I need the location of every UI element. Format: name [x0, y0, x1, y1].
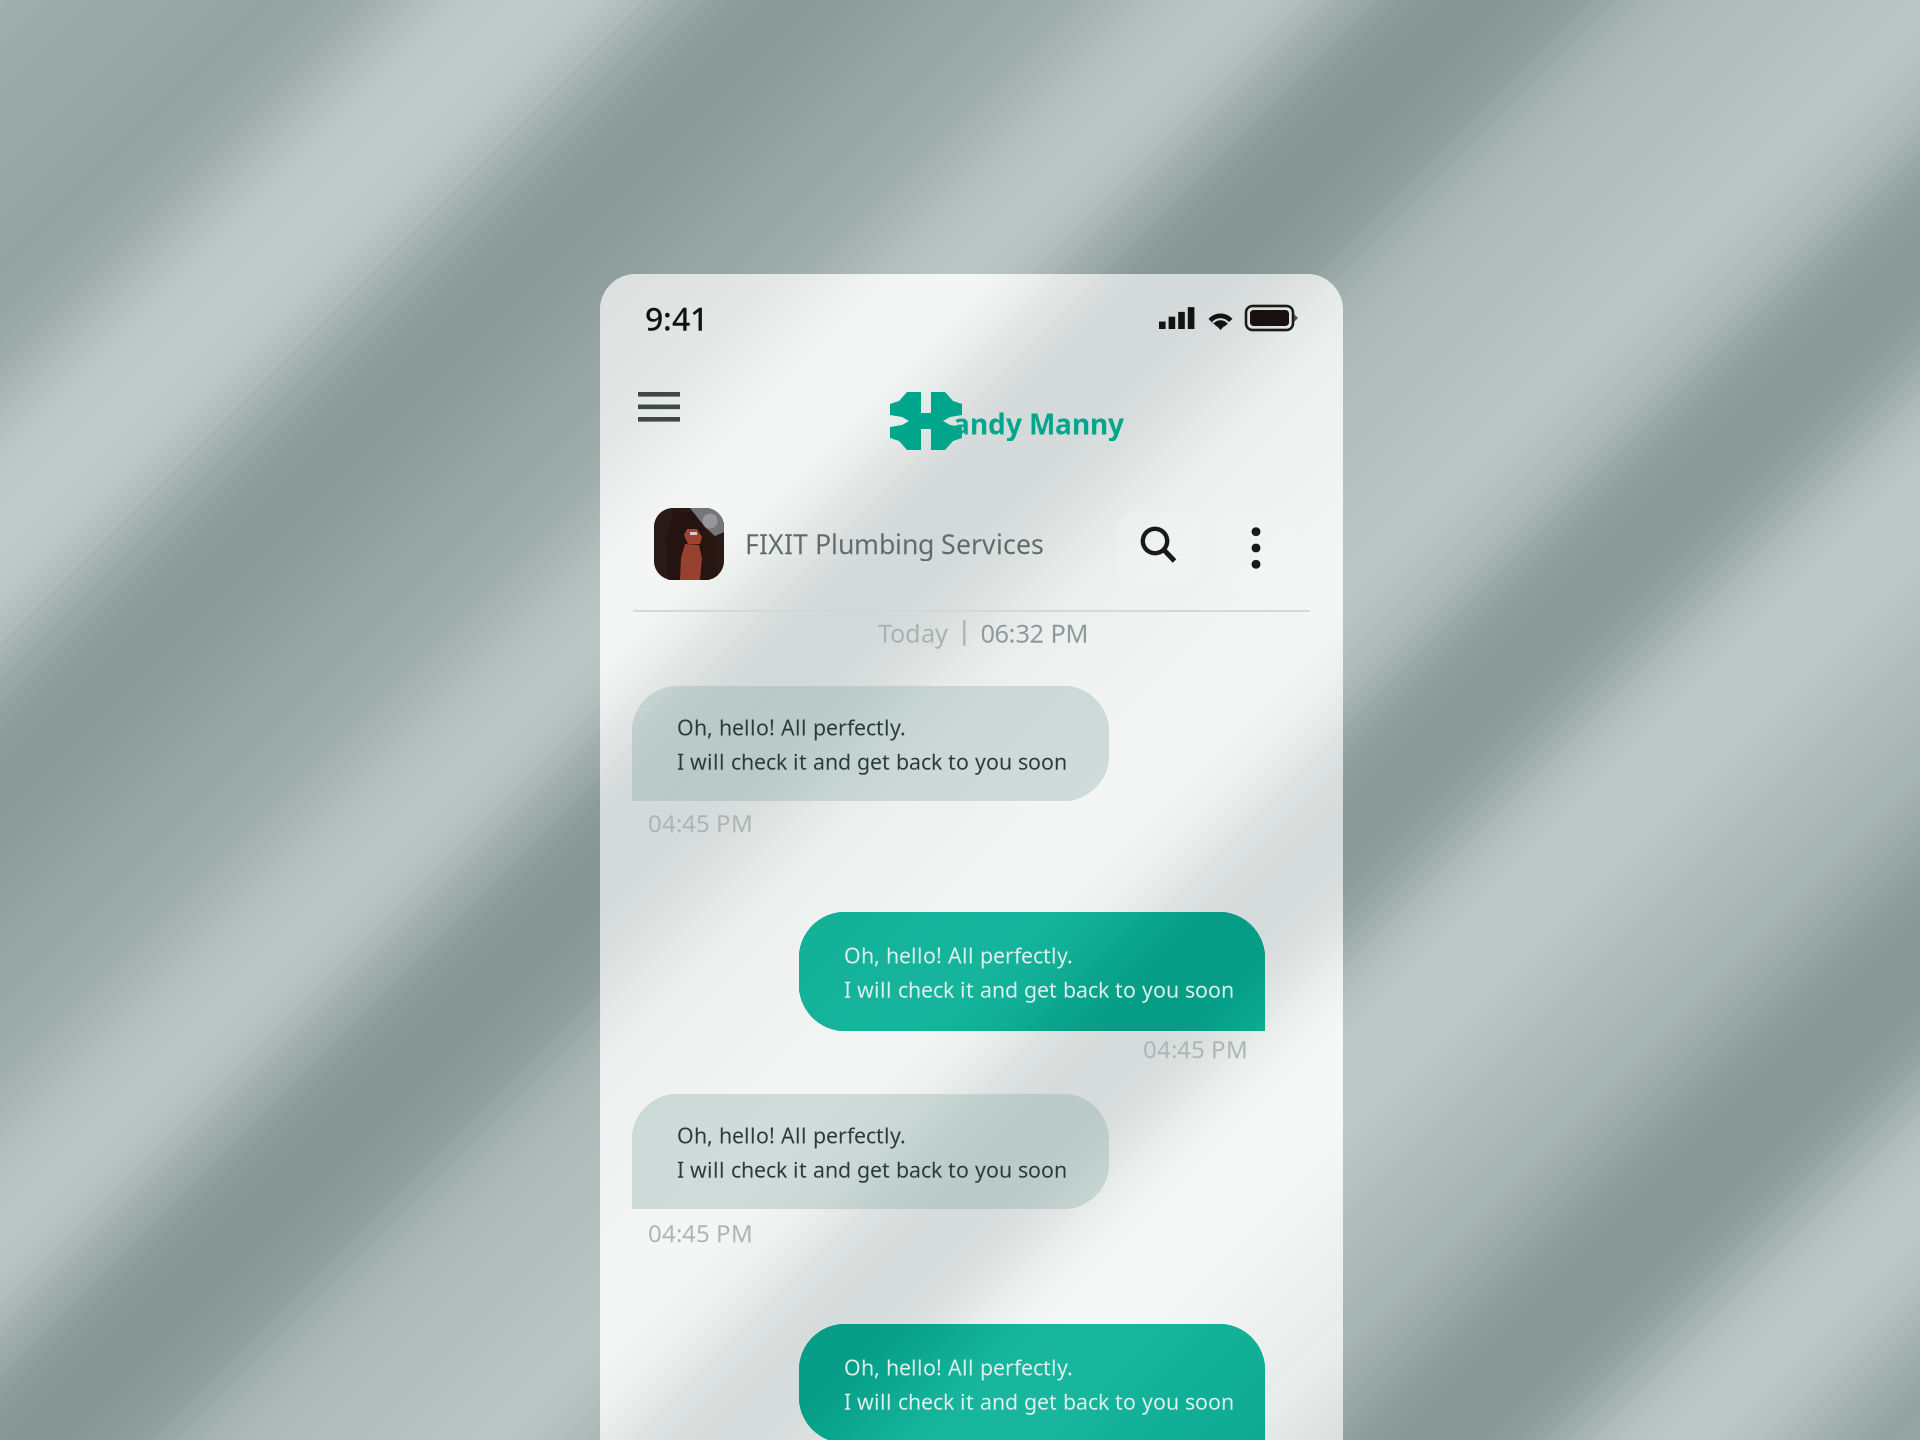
- staticText: Oh, hello! All perfectly.: [844, 1353, 1073, 1381]
- staticText: 04:45 PM: [1143, 1033, 1248, 1065]
- staticText: I will check it and get back to you soon: [677, 1155, 1067, 1184]
- staticText: 04:45 PM: [648, 807, 753, 839]
- button[interactable]: Search: [1141, 527, 1181, 567]
- staticText: 06:32 PM: [981, 616, 1089, 650]
- staticText: Oh, hello! All perfectly.: [677, 1121, 906, 1149]
- staticText: FIXIT Plumbing Services: [745, 526, 1044, 562]
- button[interactable]: FIXIT Plumbing Services: [654, 508, 1044, 580]
- button[interactable]: Menu: [630, 384, 688, 430]
- staticText: Today: [878, 616, 948, 650]
- staticText: I will check it and get back to you soon: [844, 975, 1234, 1004]
- staticText: I will check it and get back to you soon: [677, 747, 1067, 776]
- staticText: 04:45 PM: [648, 1217, 753, 1249]
- staticText: I will check it and get back to you soon: [844, 1387, 1234, 1416]
- staticText: 9:41: [645, 297, 708, 339]
- staticText: Oh, hello! All perfectly.: [677, 713, 906, 741]
- button[interactable]: More options: [1246, 528, 1266, 568]
- staticText: Oh, hello! All perfectly.: [844, 941, 1073, 969]
- staticText: andy Manny: [953, 405, 1124, 442]
